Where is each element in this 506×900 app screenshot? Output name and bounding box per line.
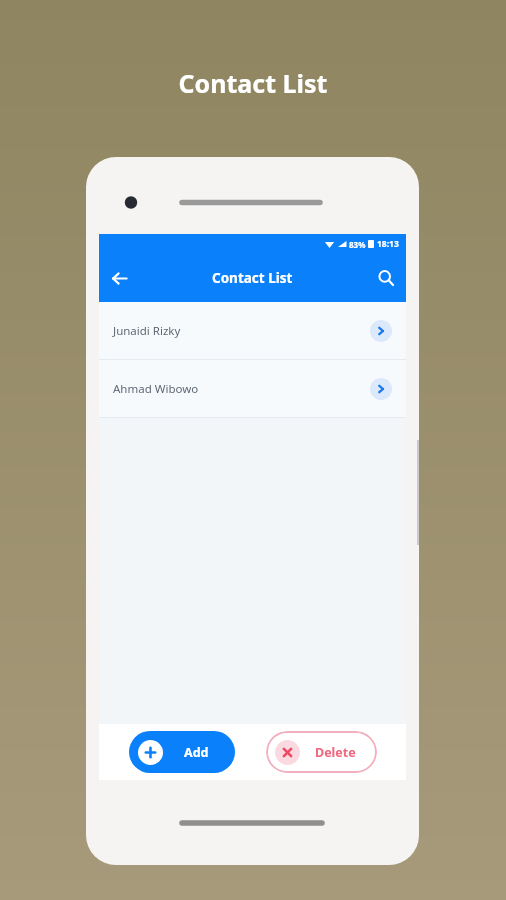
staticText: Junaidi Rizky	[113, 323, 181, 339]
staticText: Delete	[315, 744, 356, 761]
staticText: 83%	[349, 239, 366, 250]
staticText: Add	[184, 744, 209, 761]
button[interactable]: Add	[129, 731, 235, 773]
button[interactable]: Back	[99, 258, 139, 298]
staticText: Contact List	[212, 269, 293, 287]
staticText: Contact List	[0, 66, 506, 100]
staticText: Ahmad Wibowo	[113, 381, 199, 397]
button[interactable]: Ahmad Wibowo	[99, 360, 406, 417]
staticText: 18:13	[377, 238, 399, 250]
button[interactable]: Junaidi Rizky	[99, 302, 406, 359]
button[interactable]: Search	[366, 258, 406, 298]
button[interactable]: Delete	[266, 731, 377, 773]
